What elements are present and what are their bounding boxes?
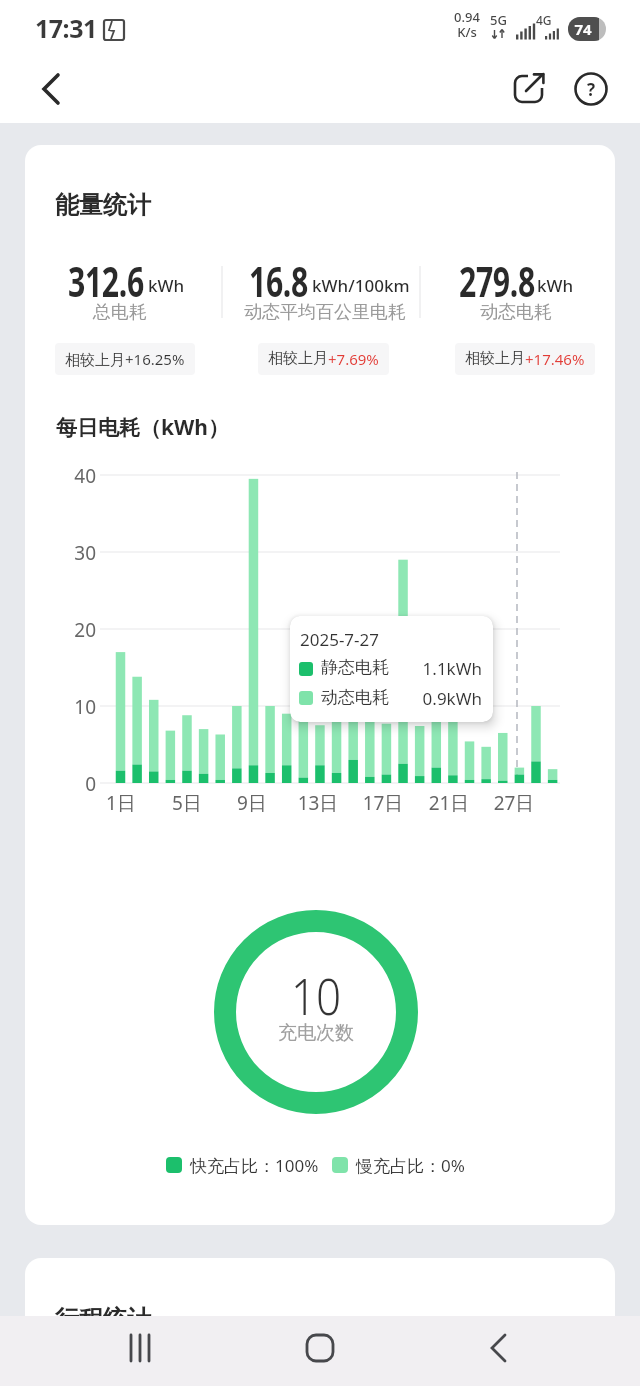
staticText: K/s	[448, 23, 486, 41]
staticText: 13日	[288, 790, 348, 816]
staticText: 相较上月+16.25%	[65, 349, 185, 369]
staticText: kWh	[148, 274, 185, 297]
staticText: 充电次数	[266, 1021, 366, 1045]
button[interactable]: 相较上月+16.25%	[55, 343, 195, 375]
staticText: 动态平均百公里电耗	[225, 301, 425, 324]
staticText: 9日	[222, 790, 282, 816]
staticText: 16.8	[249, 252, 308, 309]
staticText: 40	[60, 463, 96, 489]
staticText: 能量统计	[55, 190, 151, 220]
button[interactable]	[30, 65, 78, 113]
staticText: 0.9kWh	[390, 687, 482, 710]
staticText: 行程统计	[55, 1304, 151, 1334]
staticText: 5日	[157, 790, 217, 816]
button[interactable]	[214, 1316, 427, 1386]
staticText: 17日	[353, 790, 413, 816]
staticText: 5G	[490, 11, 507, 29]
staticText: kWh	[537, 274, 574, 297]
staticText: 0	[60, 771, 96, 797]
staticText: 动态电耗	[321, 687, 389, 708]
staticText: 312.6	[68, 252, 144, 309]
staticText: 静态电耗	[321, 657, 389, 678]
staticText: +17.46%	[525, 349, 585, 369]
staticText: kWh/100km	[312, 274, 410, 297]
staticText: 相较上月	[268, 349, 328, 368]
staticText: 慢充占比：0%	[356, 1154, 465, 1177]
staticText: +7.69%	[328, 349, 379, 369]
staticText: 相较上月	[465, 349, 525, 368]
staticText: 动态电耗	[416, 301, 616, 324]
staticText: 279.8	[459, 252, 535, 309]
staticText: 快充占比：100%	[190, 1154, 319, 1177]
staticText: 20	[60, 617, 96, 643]
staticText: 10	[60, 694, 96, 720]
staticText: 1.1kWh	[390, 657, 482, 680]
staticText: 21日	[419, 790, 479, 816]
button[interactable]	[567, 65, 615, 113]
staticText: 0.94	[448, 8, 486, 26]
staticText: 每日电耗（kWh）	[56, 413, 229, 442]
button[interactable]	[505, 65, 553, 113]
staticText: 30	[60, 540, 96, 566]
button[interactable]: 相较上月	[258, 343, 389, 375]
staticText: 1日	[91, 790, 151, 816]
button[interactable]	[427, 1316, 640, 1386]
staticText: 总电耗	[20, 301, 220, 324]
staticText: ?	[583, 78, 599, 101]
staticText: 17:31	[35, 11, 97, 45]
staticText: 4G	[536, 12, 552, 28]
button[interactable]	[0, 1316, 214, 1386]
button[interactable]: 相较上月	[455, 343, 595, 375]
staticText: 10	[272, 962, 360, 1030]
staticText: 27日	[484, 790, 544, 816]
staticText: 74	[568, 19, 598, 39]
staticText: 2025-7-27	[300, 628, 380, 651]
